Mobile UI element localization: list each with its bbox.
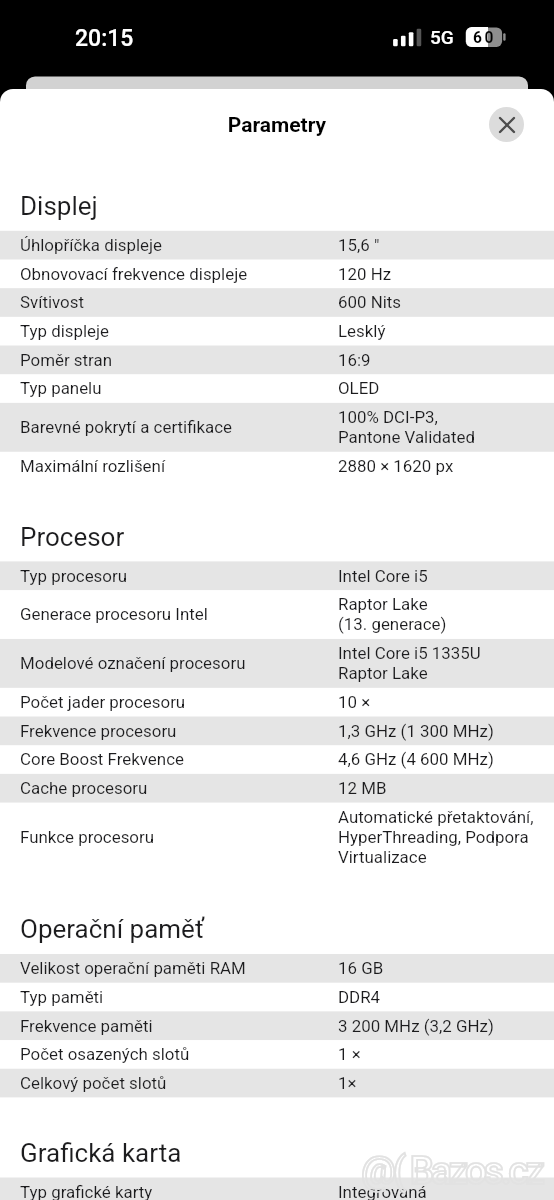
staticText: Automatické přetaktování, HyperThreading… [338, 807, 534, 867]
button[interactable] [0, 1040, 554, 1069]
staticText: 120 Hz [338, 264, 392, 284]
staticText: Frekvence procesoru [20, 721, 177, 741]
button[interactable]: Zavřít [489, 107, 524, 142]
staticText: 1,3 GHz (1 300 MHz) [338, 721, 494, 741]
button[interactable] [0, 452, 554, 481]
staticText: 15,6 " [338, 235, 380, 255]
staticText: Frekvence paměti [20, 1016, 153, 1036]
staticText: Počet osazených slotů [20, 1044, 190, 1064]
button[interactable] [0, 231, 554, 260]
staticText: Počet jader procesoru [20, 692, 186, 712]
button[interactable] [0, 346, 554, 375]
button[interactable] [0, 745, 554, 774]
staticText: Generace procesoru Intel [20, 604, 208, 624]
staticText: Raptor Lake (13. generace) [338, 594, 447, 634]
staticText: Grafická karta [20, 1138, 182, 1168]
staticText: 2880 × 1620 px [338, 456, 454, 476]
button[interactable] [0, 983, 554, 1012]
button[interactable] [0, 954, 554, 983]
staticText: 5G [430, 26, 454, 48]
staticText: Procesor [20, 522, 125, 552]
button[interactable] [0, 317, 554, 346]
button[interactable] [0, 590, 554, 639]
button[interactable] [0, 288, 554, 317]
staticText: Svítivost [20, 292, 84, 312]
staticText: Maximální rozlišení [20, 456, 166, 476]
button[interactable] [0, 1011, 554, 1040]
button[interactable] [0, 639, 554, 688]
button[interactable] [0, 403, 554, 452]
staticText: 16 GB [338, 958, 384, 978]
staticText: 3 200 MHz (3,2 GHz) [338, 1016, 494, 1036]
staticText: 20:15 [75, 25, 134, 52]
staticText: DDR4 [338, 987, 381, 1007]
staticText: 60 [473, 29, 497, 47]
staticText: Typ panelu [20, 378, 102, 398]
button[interactable] [0, 688, 554, 717]
staticText: Operační paměť [20, 914, 204, 944]
button[interactable] [0, 561, 554, 590]
button[interactable] [0, 374, 554, 403]
staticText: Lesklý [338, 321, 386, 341]
button[interactable] [0, 1178, 554, 1200]
staticText: Celkový počet slotů [20, 1073, 167, 1093]
staticText: 4,6 GHz (4 600 MHz) [338, 749, 494, 769]
staticText: 100% DCI-P3, Pantone Validated [338, 407, 476, 447]
button[interactable] [0, 803, 554, 872]
staticText: Parametry [0, 113, 554, 138]
staticText: Typ procesoru [20, 566, 128, 586]
staticText: OLED [338, 378, 380, 398]
staticText: Typ paměti [20, 987, 104, 1007]
staticText: Core Boost Frekvence [20, 749, 184, 769]
staticText: 1× [338, 1073, 357, 1093]
staticText: Modelové označení procesoru [20, 653, 246, 673]
staticText: 600 Nits [338, 292, 402, 312]
staticText: Obnovovací frekvence displeje [20, 264, 248, 284]
button[interactable] [0, 717, 554, 746]
staticText: Barevné pokrytí a certifikace [20, 417, 233, 437]
button[interactable] [0, 1069, 554, 1098]
button[interactable] [0, 774, 554, 803]
staticText: @( Bazos.cz [361, 1148, 542, 1194]
staticText: Displej [20, 191, 98, 221]
staticText: Cache procesoru [20, 778, 148, 798]
staticText: Poměr stran [20, 350, 113, 370]
staticText: Integrovaná [338, 1182, 427, 1200]
staticText: 12 MB [338, 778, 387, 798]
staticText: Intel Core i5 [338, 566, 428, 586]
button[interactable] [0, 259, 554, 288]
staticText: Funkce procesoru [20, 827, 155, 847]
staticText: 1 × [338, 1044, 361, 1064]
staticText: Intel Core i5 1335U Raptor Lake [338, 643, 481, 683]
staticText: Typ displeje [20, 321, 110, 341]
staticText: 10 × [338, 692, 371, 712]
staticText: Typ grafické karty [20, 1182, 153, 1200]
staticText: 16:9 [338, 350, 371, 370]
staticText: Úhlopříčka displeje [20, 235, 163, 255]
staticText: Velikost operační paměti RAM [20, 958, 246, 978]
